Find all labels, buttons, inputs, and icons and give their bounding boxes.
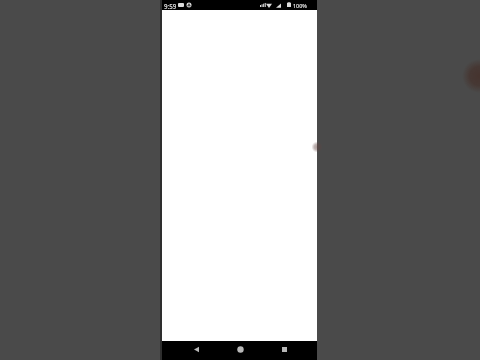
button[interactable]: Recent apps	[264, 341, 309, 360]
button[interactable]: Back	[174, 341, 219, 360]
staticText: 100%	[293, 2, 307, 9]
button[interactable]: Home	[219, 341, 264, 360]
staticText: 9:59	[164, 2, 177, 10]
